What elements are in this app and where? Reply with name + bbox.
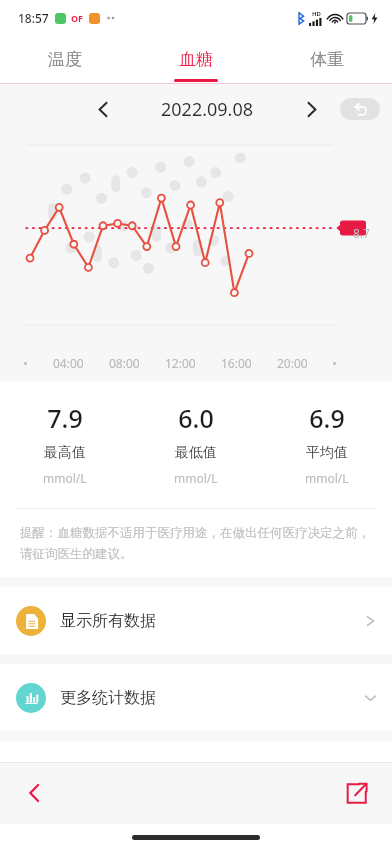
button[interactable]: 温度: [0, 35, 130, 83]
staticText: 提醒：血糖数据不适用于医疗用途，在做出任何医疗决定之前，请征询医生的建议。: [20, 525, 372, 561]
button[interactable]: Previous day: [86, 92, 120, 126]
staticText: 20:00: [277, 355, 308, 371]
staticText: 最高值: [44, 444, 86, 462]
staticText: 平均值: [306, 444, 348, 462]
button[interactable]: Back: [12, 771, 56, 815]
staticText: 最低值: [175, 444, 217, 462]
staticText: 2022.09.08: [161, 97, 254, 122]
staticText: 更多统计数据: [60, 688, 156, 708]
staticText: HD: [312, 10, 321, 18]
staticText: 18:57: [18, 10, 49, 26]
button[interactable]: 显示所有数据: [0, 587, 392, 654]
staticText: 温度: [48, 49, 82, 70]
button[interactable]: Reset: [340, 98, 380, 120]
staticText: 体重: [310, 49, 344, 70]
staticText: mmol/L: [305, 470, 349, 486]
button[interactable]: 体重: [261, 35, 392, 83]
staticText: 04:00: [53, 355, 84, 371]
staticText: mmol/L: [43, 470, 87, 486]
staticText: 6.9: [309, 401, 345, 435]
staticText: 7.9: [47, 401, 83, 435]
staticText: 显示所有数据: [60, 611, 156, 631]
staticText: 08:00: [109, 355, 140, 371]
button[interactable]: Next day: [294, 92, 328, 126]
staticText: 血糖: [179, 49, 213, 70]
button[interactable]: 血糖: [130, 35, 261, 83]
staticText: 8.7: [353, 225, 370, 241]
staticText: mmol/L: [174, 470, 218, 486]
staticText: 6.0: [178, 401, 214, 435]
button[interactable]: 更多统计数据: [0, 664, 392, 731]
staticText: 12:00: [165, 355, 196, 371]
button[interactable]: Share: [334, 771, 378, 815]
staticText: OF: [71, 12, 84, 24]
staticText: 16:00: [221, 355, 252, 371]
